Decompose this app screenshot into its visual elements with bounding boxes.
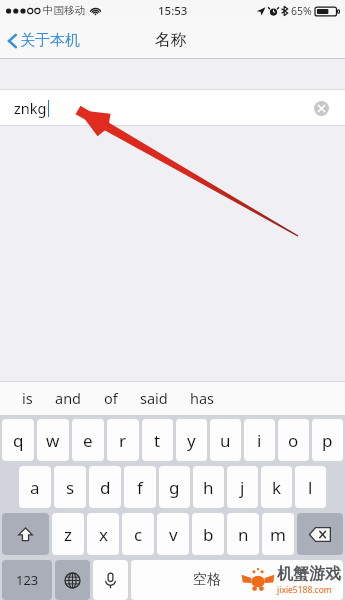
staticText: is: [22, 388, 33, 408]
button[interactable]: has: [182, 385, 223, 411]
button[interactable]: h: [193, 466, 224, 508]
staticText: 关于本机: [20, 31, 80, 50]
button[interactable]: Switch keyboard: [55, 560, 90, 600]
button[interactable]: c: [122, 513, 154, 555]
button[interactable]: Clear text: [310, 97, 332, 119]
staticText: j: [240, 476, 245, 499]
staticText: b: [203, 523, 214, 546]
staticText: e: [83, 429, 93, 452]
button[interactable]: Backspace: [297, 513, 343, 555]
button[interactable]: g: [159, 466, 190, 508]
staticText: p: [322, 429, 333, 452]
button[interactable]: d: [89, 466, 121, 508]
button[interactable]: a: [19, 466, 51, 508]
staticText: u: [220, 429, 231, 452]
staticText: 空格: [193, 571, 221, 589]
button[interactable]: b: [192, 513, 224, 555]
staticText: g: [169, 476, 180, 499]
staticText: has: [190, 388, 215, 408]
staticText: t: [154, 429, 161, 452]
staticText: k: [272, 476, 282, 499]
button[interactable]: 空格: [131, 560, 343, 600]
button[interactable]: said: [132, 385, 176, 411]
button[interactable]: z: [52, 513, 84, 555]
staticText: l: [308, 476, 313, 499]
button[interactable]: k: [261, 466, 292, 508]
staticText: r: [119, 429, 127, 452]
button[interactable]: l: [295, 466, 326, 508]
button[interactable]: 关于本机: [0, 27, 88, 54]
staticText: w: [46, 429, 60, 452]
button[interactable]: Shift: [2, 513, 49, 555]
button[interactable]: p: [312, 419, 343, 461]
button[interactable]: t: [142, 419, 173, 461]
button[interactable]: and: [47, 385, 90, 411]
button[interactable]: o: [278, 419, 309, 461]
button[interactable]: n: [227, 513, 259, 555]
staticText: y: [187, 429, 196, 452]
staticText: znkg: [14, 98, 47, 118]
staticText: v: [169, 523, 178, 546]
staticText: c: [134, 523, 143, 546]
staticText: jixie5188.com: [277, 584, 332, 596]
button[interactable]: i: [244, 419, 275, 461]
button[interactable]: r: [107, 419, 139, 461]
button[interactable]: m: [262, 513, 294, 555]
button[interactable]: x: [87, 513, 119, 555]
staticText: q: [13, 429, 24, 452]
button[interactable]: s: [54, 466, 86, 508]
staticText: o: [288, 429, 299, 452]
button[interactable]: j: [227, 466, 258, 508]
button[interactable]: f: [124, 466, 156, 508]
staticText: 中国移动: [43, 4, 85, 17]
staticText: a: [30, 476, 40, 499]
button[interactable]: v: [157, 513, 189, 555]
staticText: s: [66, 476, 75, 499]
staticText: i: [257, 429, 262, 452]
staticText: said: [140, 388, 168, 408]
button[interactable]: u: [210, 419, 241, 461]
staticText: z: [64, 523, 72, 546]
staticText: and: [55, 388, 82, 408]
button[interactable]: y: [176, 419, 207, 461]
staticText: 15:53: [158, 3, 188, 19]
button[interactable]: e: [72, 419, 104, 461]
staticText: h: [203, 476, 214, 499]
staticText: d: [100, 476, 111, 499]
button[interactable]: of: [96, 385, 126, 411]
button[interactable]: 123: [2, 560, 52, 600]
staticText: m: [270, 523, 286, 546]
button[interactable]: Voice input: [93, 560, 128, 600]
staticText: 65%: [291, 4, 312, 18]
staticText: 机蟹游戏: [277, 564, 341, 584]
staticText: 名称: [155, 30, 187, 50]
staticText: 123: [16, 571, 39, 589]
staticText: of: [104, 388, 118, 408]
staticText: n: [238, 523, 249, 546]
button[interactable]: q: [2, 419, 34, 461]
staticText: f: [137, 476, 143, 499]
button[interactable]: w: [37, 419, 69, 461]
button[interactable]: is: [14, 385, 41, 411]
staticText: x: [99, 523, 108, 546]
